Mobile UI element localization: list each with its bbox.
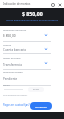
staticText: Cuenta xyxy=(3,43,12,46)
button[interactable]: Expand xyxy=(43,60,49,66)
button[interactable]: Expand xyxy=(43,32,49,38)
staticText: Indicación de monto xyxy=(3,28,27,31)
button[interactable]: Close xyxy=(56,1,63,8)
staticText: 21/04 xyxy=(33,88,39,91)
button[interactable]: Expand xyxy=(43,46,49,52)
staticText: $ 850,00 xyxy=(22,10,43,17)
staticText: Indicación de montos xyxy=(3,2,49,6)
staticText: Indicación Estado xyxy=(3,70,23,73)
staticText: Medio de cobro xyxy=(3,56,21,59)
staticText: Confirmar xyxy=(35,105,47,108)
staticText: Fecha xyxy=(3,83,10,86)
staticText: Si el importe es mayor xyxy=(3,94,28,97)
staticText: Pagos en cuotas fijas? xyxy=(3,103,30,107)
button[interactable]: Help xyxy=(49,1,56,8)
staticText: Cuenta bancaria xyxy=(3,48,27,52)
button[interactable]: 21/04 xyxy=(28,87,44,92)
button[interactable]: Pagos en cuotas fijas? xyxy=(3,103,30,107)
staticText: $ 850,00 xyxy=(3,34,16,38)
staticText: Monto disponible para indicar en este mo… xyxy=(6,19,59,22)
staticText: Pendiente xyxy=(3,77,18,81)
button[interactable]: Confirmar xyxy=(30,102,52,110)
staticText: Transferencia xyxy=(3,63,23,67)
